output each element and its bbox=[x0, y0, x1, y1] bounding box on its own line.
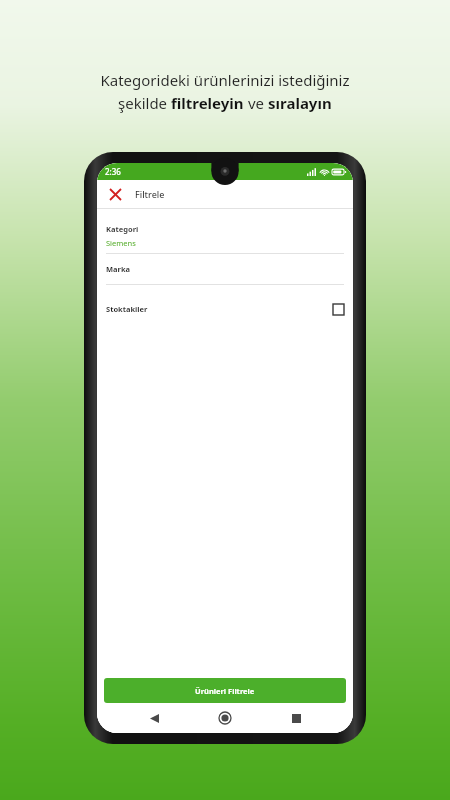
staticText: şekilde bbox=[118, 93, 171, 113]
staticText: 2:36 bbox=[105, 166, 121, 177]
staticText: ve bbox=[244, 93, 268, 113]
staticText: Siemens bbox=[106, 238, 136, 248]
staticText: Filtrele bbox=[135, 188, 165, 200]
button[interactable]: Stoktakiler bbox=[97, 297, 353, 321]
staticText: Ürünleri Filtrele bbox=[195, 686, 255, 696]
staticText: Kategori bbox=[106, 224, 139, 234]
button[interactable]: Marka bbox=[97, 254, 353, 284]
button[interactable]: Kapat bbox=[103, 182, 127, 206]
staticText: filtreleyin bbox=[171, 93, 244, 113]
staticText: Stoktakiler bbox=[106, 304, 148, 314]
staticText: Kategorideki ürünlerinizi istediğiniz bbox=[100, 70, 350, 90]
button[interactable]: Kategori bbox=[97, 219, 353, 253]
staticText: sıralayın bbox=[268, 93, 332, 113]
button[interactable]: Ürünleri Filtrele bbox=[104, 678, 346, 703]
button[interactable]: Ana ekran bbox=[211, 704, 239, 732]
button[interactable]: Geri bbox=[140, 704, 168, 732]
button[interactable]: Son uygulamalar bbox=[282, 704, 310, 732]
staticText: Marka bbox=[106, 264, 131, 274]
